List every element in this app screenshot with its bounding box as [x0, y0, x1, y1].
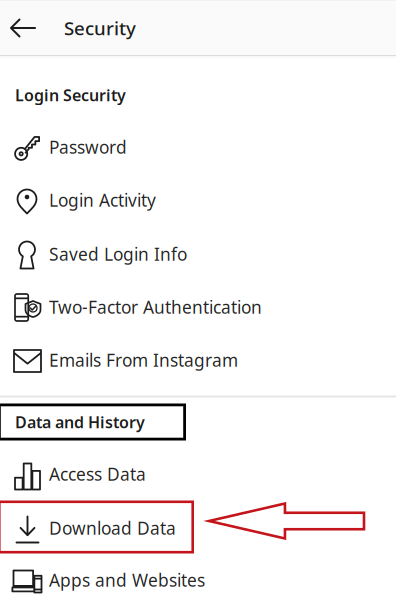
button[interactable]: Password	[0, 120, 396, 173]
staticText: Login Security	[15, 84, 126, 106]
button[interactable]: Download Data	[0, 501, 396, 554]
staticText: Access Data	[49, 462, 146, 485]
staticText: Two-Factor Authentication	[49, 295, 262, 318]
button[interactable]: Login Activity	[0, 173, 396, 226]
button[interactable]: Two-Factor Authentication	[0, 280, 396, 333]
staticText: Apps and Websites	[49, 568, 205, 591]
staticText: Security	[64, 16, 136, 40]
staticText: Saved Login Info	[49, 242, 187, 265]
staticText: Emails From Instagram	[49, 348, 238, 371]
button[interactable]: Apps and Websites	[0, 553, 396, 606]
staticText: Data and History	[15, 411, 145, 433]
staticText: Login Activity	[49, 188, 156, 211]
button[interactable]: Back	[0, 6, 46, 50]
button[interactable]: Access Data	[0, 447, 396, 500]
staticText: Password	[49, 135, 127, 158]
button[interactable]: Saved Login Info	[0, 227, 396, 280]
staticText: Download Data	[49, 516, 176, 539]
button[interactable]: Emails From Instagram	[0, 333, 396, 386]
